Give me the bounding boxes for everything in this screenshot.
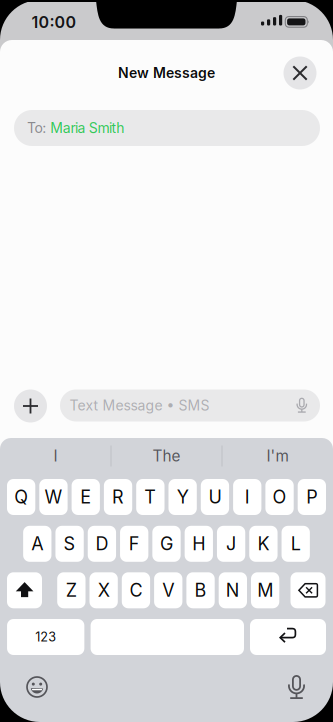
button[interactable]: S (55, 526, 84, 562)
button[interactable]: Add attachment (14, 389, 47, 422)
button[interactable]: V (154, 572, 182, 608)
button[interactable]: Z (57, 572, 85, 608)
staticText: R (112, 486, 124, 508)
staticText: N (226, 579, 240, 601)
button[interactable]: A (23, 526, 51, 562)
staticText: New Message (118, 64, 215, 81)
button[interactable]: Close (283, 56, 316, 89)
button[interactable]: H (185, 526, 213, 562)
button[interactable]: R (104, 479, 132, 515)
staticText: X (98, 579, 110, 601)
staticText: Text Message • SMS (69, 397, 209, 414)
button[interactable]: P (298, 479, 326, 515)
button[interactable]: O (265, 479, 294, 515)
staticText: Y (177, 486, 189, 508)
button[interactable]: G (152, 526, 181, 562)
staticText: A (31, 533, 43, 555)
staticText: U (208, 486, 221, 508)
button[interactable]: Q (7, 479, 35, 515)
button[interactable]: Delete (290, 572, 325, 608)
button[interactable]: E (72, 479, 100, 515)
button[interactable]: The (114, 441, 219, 471)
staticText: J (226, 533, 236, 555)
button[interactable]: I (3, 441, 108, 471)
staticText: H (192, 533, 205, 555)
staticText: 123 (35, 629, 56, 645)
button[interactable]: C (122, 572, 150, 608)
button[interactable]: B (186, 572, 215, 608)
staticText: The (152, 447, 180, 465)
staticText: K (257, 533, 269, 555)
staticText: I'm (266, 447, 288, 465)
staticText: D (95, 533, 108, 555)
button[interactable]: Y (168, 479, 197, 515)
staticText: F (129, 533, 140, 555)
button[interactable]: F (120, 526, 148, 562)
button[interactable]: To: (14, 110, 320, 146)
staticText: I (53, 447, 57, 465)
button[interactable]: L (282, 526, 310, 562)
button[interactable]: Shift (7, 572, 42, 608)
staticText: I (245, 486, 250, 508)
button[interactable]: M (251, 572, 279, 608)
button[interactable]: I'm (225, 441, 330, 471)
button[interactable]: D (88, 526, 116, 562)
staticText: B (194, 579, 206, 601)
button[interactable]: U (201, 479, 229, 515)
staticText: Q (14, 486, 28, 508)
staticText: 10:00 (31, 13, 76, 32)
staticText: To: (27, 119, 46, 136)
button[interactable] (91, 619, 244, 655)
button[interactable]: I (233, 479, 261, 515)
staticText: T (144, 486, 156, 508)
button[interactable]: Dictation (274, 670, 318, 704)
staticText: P (306, 486, 317, 508)
staticText: Z (66, 579, 77, 601)
staticText: L (291, 533, 301, 555)
button[interactable]: N (219, 572, 247, 608)
button[interactable]: X (89, 572, 118, 608)
staticText: C (129, 579, 142, 601)
button[interactable]: W (39, 479, 68, 515)
button[interactable]: T (136, 479, 164, 515)
staticText: G (160, 533, 173, 555)
button[interactable]: Emoji (15, 670, 59, 704)
button[interactable]: Return (250, 619, 326, 655)
staticText: V (162, 579, 174, 601)
button[interactable]: K (249, 526, 277, 562)
button[interactable]: J (217, 526, 245, 562)
staticText: O (272, 486, 286, 508)
staticText: S (64, 533, 76, 555)
button[interactable]: 123 (7, 619, 84, 655)
staticText: M (257, 579, 273, 601)
button[interactable]: Text Message (60, 389, 320, 421)
staticText: Maria Smith (50, 119, 124, 136)
staticText: E (80, 486, 91, 508)
staticText: W (44, 486, 62, 508)
